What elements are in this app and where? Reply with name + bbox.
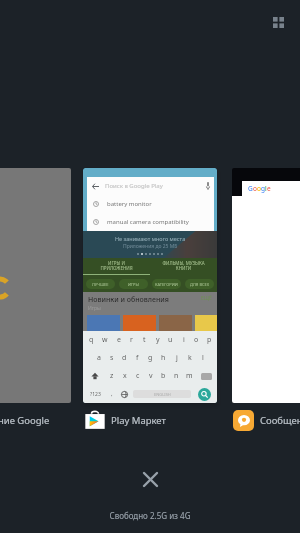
button[interactable]: Shift xyxy=(84,367,105,385)
button[interactable]: q xyxy=(84,331,98,349)
staticText: y xyxy=(156,335,160,345)
button[interactable]: ЛУЧШЕЕ xyxy=(86,279,115,289)
button[interactable]: battery monitor xyxy=(93,195,209,213)
staticText: ФИЛЬМЫ, МУЗЫКА КНИГИ xyxy=(162,260,205,272)
button[interactable]: d xyxy=(118,349,131,367)
button[interactable]: x xyxy=(118,367,131,385)
staticText: ИГРЫ И ПРИЛОЖЕНИЯ xyxy=(100,260,133,272)
button[interactable]: o xyxy=(190,331,203,349)
button[interactable]: v xyxy=(144,367,157,385)
staticText: x xyxy=(123,371,127,381)
staticText: m xyxy=(186,371,193,381)
staticText: ЕЩЁ xyxy=(201,295,212,302)
staticText: КАТЕГОРИИ xyxy=(155,282,178,287)
staticText: battery monitor xyxy=(107,200,152,208)
staticText: g xyxy=(148,353,153,363)
button[interactable]: s xyxy=(105,349,118,367)
button[interactable]: t xyxy=(138,331,151,349)
staticText: Сообщения xyxy=(260,414,300,427)
button[interactable]: l xyxy=(196,349,209,367)
button[interactable]: b xyxy=(157,367,170,385)
staticText: Приложение Google xyxy=(0,414,50,427)
button[interactable]: , xyxy=(106,385,117,403)
staticText: Поиск в Google Play xyxy=(105,182,163,190)
staticText: Свободно 2.5G из 4G xyxy=(0,510,300,521)
staticText: b xyxy=(161,371,166,381)
button[interactable]: manual camera compatibility xyxy=(93,213,209,231)
button[interactable]: Close all xyxy=(136,465,164,493)
button[interactable]: p xyxy=(203,331,216,349)
button[interactable]: Grid view xyxy=(264,8,292,36)
staticText: t xyxy=(143,335,146,345)
staticText: c xyxy=(136,371,140,381)
button[interactable]: Поиск в Google Play xyxy=(83,168,217,403)
button[interactable]: Change language xyxy=(117,385,131,403)
staticText: a xyxy=(97,353,101,363)
button[interactable]: ДЛЯ ВСЕХ xyxy=(185,279,214,289)
staticText: u xyxy=(168,335,173,345)
button[interactable]: r xyxy=(125,331,138,349)
button[interactable]: k xyxy=(183,349,196,367)
staticText: q xyxy=(89,335,94,345)
staticText: z xyxy=(110,371,114,381)
staticText: G xyxy=(248,184,253,193)
staticText: ДЛЯ ВСЕХ xyxy=(190,282,210,287)
button[interactable] xyxy=(0,168,71,403)
staticText: ENGLISH xyxy=(154,392,171,397)
button[interactable]: ИГРЫ xyxy=(119,279,148,289)
button[interactable]: h xyxy=(157,349,170,367)
button[interactable]: a xyxy=(92,349,105,367)
staticText: o xyxy=(194,335,199,345)
staticText: d xyxy=(122,353,127,363)
button[interactable]: i xyxy=(177,331,190,349)
button[interactable]: z xyxy=(105,367,118,385)
button[interactable]: u xyxy=(164,331,177,349)
button[interactable]: m xyxy=(183,367,196,385)
button[interactable]: ENGLISH xyxy=(133,390,191,398)
button[interactable]: f xyxy=(131,349,144,367)
staticText: ЛУЧШЕЕ xyxy=(92,282,109,287)
staticText: f xyxy=(136,353,139,363)
staticText: Не занимают много места xyxy=(115,235,186,242)
staticText: h xyxy=(161,353,166,363)
staticText: o xyxy=(253,184,257,193)
staticText: , xyxy=(111,390,113,398)
staticText: l xyxy=(265,184,267,193)
staticText: manual camera compatibility xyxy=(107,218,189,226)
button[interactable]: j xyxy=(170,349,183,367)
button[interactable]: G xyxy=(232,168,300,403)
button[interactable]: g xyxy=(144,349,157,367)
button[interactable]: n xyxy=(170,367,183,385)
staticText: o xyxy=(257,184,261,193)
staticText: e xyxy=(267,184,271,193)
button[interactable]: Backspace xyxy=(196,367,216,385)
staticText: Приложения до 25 МБ xyxy=(123,243,178,250)
button[interactable]: ?123 xyxy=(84,385,106,403)
staticText: Игры xyxy=(88,305,101,312)
staticText: e xyxy=(117,335,121,345)
staticText: ?123 xyxy=(90,391,101,398)
staticText: g xyxy=(261,184,265,193)
staticText: k xyxy=(188,353,192,363)
staticText: l xyxy=(202,353,204,363)
staticText: Play Маркет xyxy=(111,414,166,427)
staticText: r xyxy=(130,335,133,345)
staticText: p xyxy=(207,335,212,345)
staticText: ИГРЫ xyxy=(128,282,139,287)
button[interactable]: e xyxy=(112,331,125,349)
button[interactable]: ИГРЫ И ПРИЛОЖЕНИЯ xyxy=(83,258,150,274)
staticText: w xyxy=(102,335,108,345)
staticText: n xyxy=(174,371,179,381)
staticText: Новинки и обновления xyxy=(88,295,169,305)
button[interactable]: y xyxy=(151,331,164,349)
staticText: s xyxy=(110,353,114,363)
button[interactable]: Search xyxy=(193,385,216,403)
button[interactable]: c xyxy=(131,367,144,385)
button[interactable]: ФИЛЬМЫ, МУЗЫКА КНИГИ xyxy=(150,258,217,274)
staticText: j xyxy=(176,353,178,363)
staticText: i xyxy=(183,335,185,345)
staticText: v xyxy=(149,371,153,381)
button[interactable]: КАТЕГОРИИ xyxy=(152,279,181,289)
button[interactable]: w xyxy=(98,331,112,349)
